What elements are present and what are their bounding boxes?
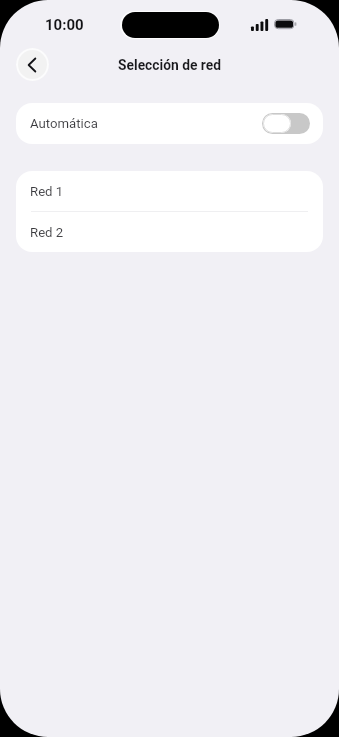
- staticText: Red 2: [30, 225, 64, 240]
- staticText: Red 1: [30, 184, 64, 199]
- button[interactable]: Automática: [262, 113, 310, 134]
- button[interactable]: Red 1: [16, 171, 323, 211]
- staticText: 10:00: [45, 16, 84, 34]
- button[interactable]: Automática: [16, 103, 323, 144]
- staticText: Selección de red: [0, 57, 339, 73]
- button[interactable]: Atrás: [16, 48, 49, 81]
- button[interactable]: Red 2: [16, 212, 323, 252]
- staticText: Automática: [30, 116, 98, 131]
